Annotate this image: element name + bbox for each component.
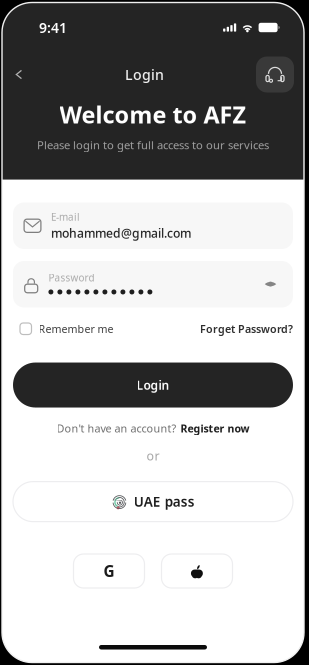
- button[interactable]: Customer support: [256, 56, 294, 92]
- staticText: mohammed@gmail.com: [51, 225, 191, 241]
- button[interactable]: Sign in with Apple: [161, 554, 232, 588]
- staticText: Please login to get full access to our s…: [37, 137, 269, 152]
- button[interactable]: Login: [13, 362, 293, 407]
- staticText: Welcome to AFZ: [59, 98, 246, 130]
- staticText: Register now: [180, 421, 249, 435]
- staticText: Login: [136, 377, 169, 393]
- staticText: 9:41: [39, 18, 67, 37]
- staticText: Don't have an account?: [56, 421, 176, 436]
- staticText: Login: [125, 65, 164, 84]
- button[interactable]: UAE pass: [13, 482, 293, 522]
- staticText: E-mail: [51, 210, 80, 224]
- staticText: G: [103, 561, 114, 581]
- staticText: Forget Password?: [200, 321, 293, 336]
- staticText: Remember me: [38, 321, 113, 336]
- staticText: Password: [48, 271, 94, 284]
- button[interactable]: Back: [4, 56, 33, 92]
- button[interactable]: Forget Password?: [200, 314, 293, 343]
- button[interactable]: Register now: [180, 421, 249, 435]
- staticText: UAE pass: [134, 492, 195, 511]
- button[interactable]: Show password: [257, 275, 284, 293]
- staticText: or: [146, 447, 159, 464]
- button[interactable]: Remember me: [13, 314, 113, 343]
- button[interactable]: Sign in with Google: [73, 554, 144, 588]
